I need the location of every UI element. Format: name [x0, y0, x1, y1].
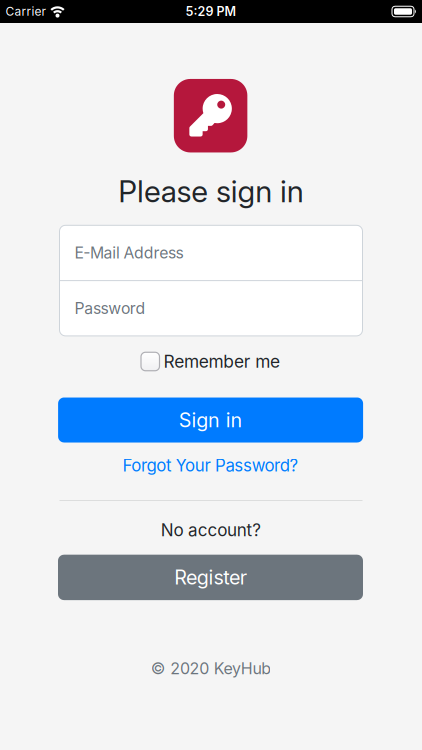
button[interactable]: Password — [59, 281, 362, 336]
staticText: Carrier — [5, 4, 46, 19]
staticText: No account? — [161, 520, 261, 540]
staticText: 5:29 PM — [185, 4, 236, 19]
staticText: Password — [74, 299, 145, 318]
button[interactable]: Register — [58, 555, 363, 600]
staticText: E-Mail Address — [74, 243, 184, 262]
staticText: © 2020 KeyHub — [151, 659, 271, 678]
button[interactable]: Remember me — [141, 351, 280, 372]
button[interactable]: Sign in — [58, 397, 363, 442]
staticText: Please sign in — [118, 173, 304, 209]
button[interactable]: E-Mail Address — [59, 225, 362, 280]
staticText: Sign in — [179, 408, 242, 432]
staticText: Register — [174, 565, 247, 589]
staticText: Remember me — [163, 351, 280, 372]
staticText: Forgot Your Password? — [122, 455, 298, 476]
button[interactable]: Forgot Your Password? — [122, 455, 298, 476]
